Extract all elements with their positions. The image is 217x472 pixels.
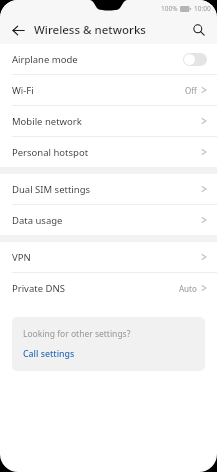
button[interactable]: Private DNS <box>0 273 217 303</box>
staticText: Auto <box>179 283 197 294</box>
staticText: Looking for other settings? <box>23 328 131 340</box>
button[interactable]: Airplane mode toggle <box>183 53 207 66</box>
button[interactable]: Dual SIM settings <box>0 174 217 204</box>
button[interactable]: Personal hotspot <box>0 137 217 167</box>
button[interactable]: VPN <box>0 242 217 272</box>
staticText: Personal hotspot <box>12 146 89 159</box>
staticText: Airplane mode <box>12 53 78 66</box>
staticText: VPN <box>12 251 31 264</box>
button[interactable]: Back <box>8 20 28 40</box>
staticText: Mobile network <box>12 115 82 128</box>
staticText: 10:00 <box>194 4 211 13</box>
staticText: Private DNS <box>12 282 65 295</box>
staticText: Dual SIM settings <box>12 183 91 196</box>
button[interactable]: Airplane mode <box>0 44 217 74</box>
staticText: Off <box>185 85 197 96</box>
staticText: Data usage <box>12 214 63 227</box>
staticText: Wireless & networks <box>34 22 146 38</box>
staticText: 100% <box>161 4 178 13</box>
button[interactable]: Wi-Fi <box>0 75 217 105</box>
button[interactable]: Mobile network <box>0 106 217 136</box>
button[interactable]: Search <box>189 20 209 40</box>
staticText: Wi-Fi <box>12 84 34 97</box>
button[interactable]: Data usage <box>0 205 217 235</box>
staticText: Call settings <box>23 348 75 360</box>
button[interactable]: Call settings <box>23 348 75 360</box>
